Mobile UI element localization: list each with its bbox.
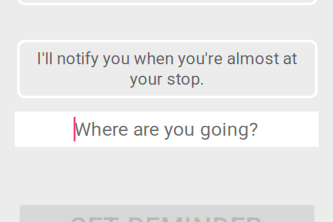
button[interactable]: Where are you going? [15, 111, 319, 147]
staticText: Where are you going? [74, 118, 258, 140]
staticText: I'll notify you when you're almost at yo… [37, 49, 297, 89]
button[interactable]: GET REMINDER [20, 205, 314, 222]
staticText: GET REMINDER [69, 212, 262, 222]
